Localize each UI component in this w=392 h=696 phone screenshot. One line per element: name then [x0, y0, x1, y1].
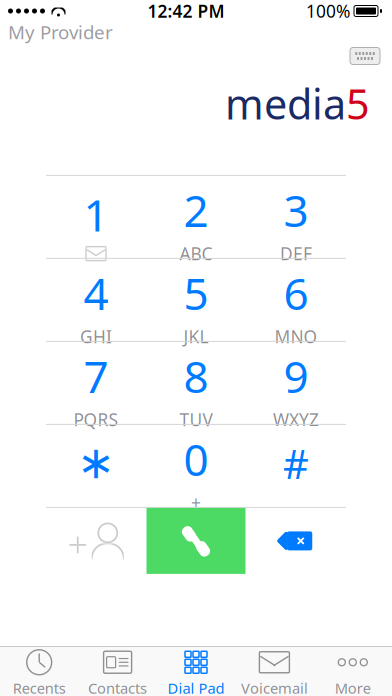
button[interactable]: Voicemail [235, 647, 314, 696]
button[interactable]: Dial Pad [157, 647, 235, 696]
button[interactable]: Add Contact [46, 508, 146, 574]
button[interactable]: 7 [46, 342, 146, 424]
staticText: 1 [83, 185, 108, 244]
staticText: PQRS [73, 408, 118, 431]
staticText: ABC [179, 242, 212, 265]
staticText: + [191, 491, 201, 514]
button[interactable]: 2 [146, 176, 246, 258]
button[interactable]: 9 [246, 342, 346, 424]
staticText: DEF [280, 242, 312, 265]
button[interactable]: 4 [46, 259, 146, 341]
button[interactable]: Delete [245, 508, 346, 574]
staticText: GHI [80, 325, 112, 348]
staticText: 5 [183, 264, 208, 322]
staticText: Dial Pad [167, 678, 224, 696]
button[interactable]: 3 [246, 176, 346, 258]
staticText: 100% [306, 0, 350, 22]
button[interactable]: Recents [0, 647, 78, 696]
button[interactable]: More [314, 647, 392, 696]
staticText: 5 [346, 76, 370, 131]
staticText: 6 [283, 264, 308, 322]
staticText: My Provider [8, 20, 113, 44]
button[interactable]: 8 [146, 342, 246, 424]
button[interactable]: 1 [46, 176, 146, 258]
staticText: Voicemail [241, 678, 308, 696]
button[interactable]: 0 [146, 425, 246, 507]
staticText: Contacts [88, 678, 147, 696]
staticText: MNO [274, 325, 317, 348]
staticText: ∗ [77, 437, 115, 488]
staticText: 2 [183, 181, 208, 239]
button[interactable]: Contacts [78, 647, 157, 696]
button[interactable]: # [246, 425, 346, 507]
staticText: 12:42 PM [147, 0, 224, 22]
staticText: 9 [283, 347, 308, 405]
button[interactable]: 6 [246, 259, 346, 341]
staticText: 0 [183, 430, 208, 488]
staticText: media [225, 76, 346, 131]
staticText: # [283, 437, 309, 490]
staticText: Recents [13, 678, 66, 696]
staticText: 3 [283, 181, 308, 239]
button[interactable]: ∗ [46, 425, 146, 507]
button[interactable]: Call [146, 508, 245, 574]
staticText: JKL [183, 325, 208, 348]
staticText: WXYZ [273, 408, 319, 431]
button[interactable]: 5 [146, 259, 246, 341]
staticText: TUV [179, 408, 212, 431]
staticText: More [335, 678, 371, 696]
staticText: 4 [83, 264, 108, 322]
button[interactable]: Keyboard [344, 42, 386, 70]
staticText: 7 [83, 347, 108, 405]
staticText: 8 [183, 347, 208, 405]
